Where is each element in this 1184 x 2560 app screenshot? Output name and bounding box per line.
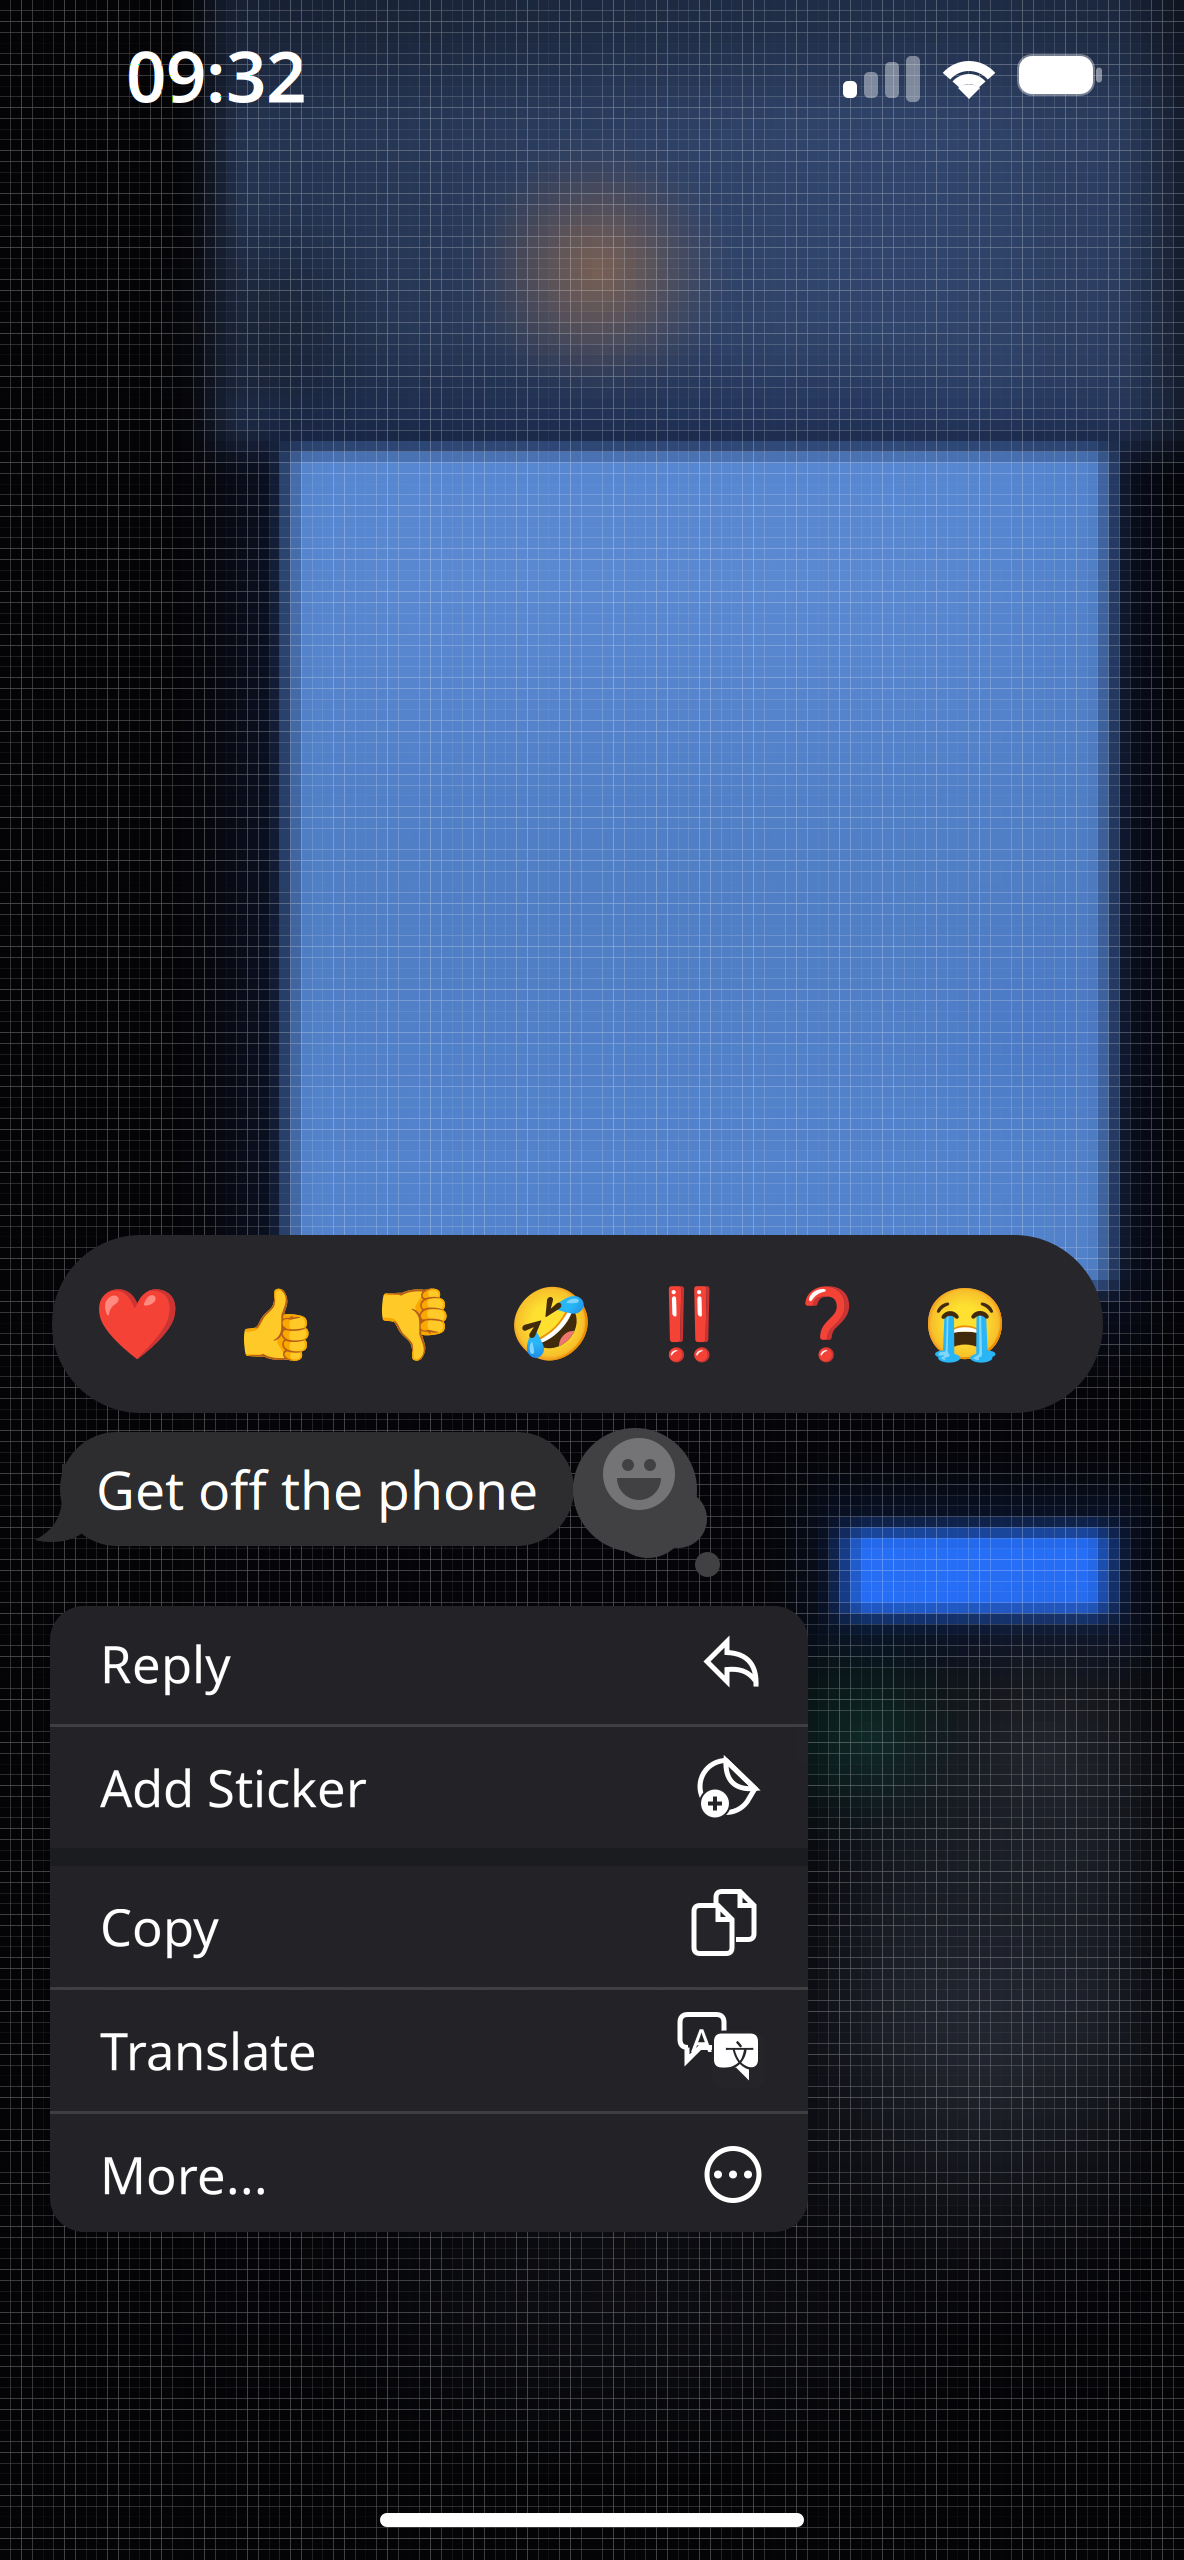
button[interactable]: Question <box>758 1235 896 1413</box>
button[interactable]: Reply <box>50 1603 808 1724</box>
staticText: Reply <box>100 1630 231 1697</box>
staticText: More... <box>100 2141 268 2208</box>
button[interactable]: Emphasize <box>620 1235 758 1413</box>
button[interactable]: Home indicator <box>380 2513 804 2527</box>
button[interactable]: Add Sticker <box>50 1727 808 1848</box>
button[interactable]: Like <box>206 1235 344 1413</box>
staticText: Copy <box>100 1893 219 1960</box>
button[interactable]: More... <box>50 2114 808 2235</box>
staticText: Translate <box>100 2017 317 2084</box>
button[interactable]: Cry <box>896 1235 1034 1413</box>
button[interactable]: Dislike <box>344 1235 482 1413</box>
staticText: ❤️ <box>94 1284 180 1364</box>
staticText: 👎 <box>370 1284 456 1364</box>
staticText: ❓ <box>784 1284 870 1364</box>
button[interactable]: Translate <box>50 1990 808 2111</box>
staticText: Get off the phone <box>96 1454 538 1524</box>
button[interactable]: Copy <box>50 1866 808 1987</box>
staticText: A <box>691 2018 712 2061</box>
staticText: ‼️ <box>646 1284 732 1364</box>
staticText: Add Sticker <box>100 1754 367 1821</box>
staticText: 文 <box>725 2037 756 2075</box>
button[interactable]: Haha <box>482 1235 620 1413</box>
staticText: 🤣 <box>508 1284 594 1364</box>
staticText: 😭 <box>922 1284 1008 1364</box>
button[interactable]: Love <box>68 1235 206 1413</box>
staticText: 👍 <box>232 1284 318 1364</box>
staticText: 09:32 <box>126 28 306 122</box>
